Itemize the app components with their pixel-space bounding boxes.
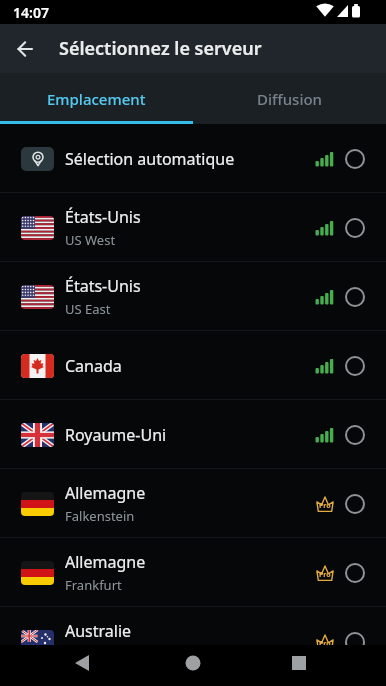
button[interactable]: Sélection automatique [0,124,386,193]
staticText: États-Unis [65,206,141,228]
button[interactable]: Allemagne [0,538,386,607]
staticText: Canada [65,355,122,377]
button[interactable]: Royaume-Uni [0,400,386,469]
button[interactable]: Emplacement [0,73,193,124]
button[interactable] [257,645,386,686]
staticText: US West [65,231,116,249]
staticText: États-Unis [65,275,141,297]
staticText: Emplacement [47,89,146,109]
staticText: Falkenstein [65,507,135,525]
button[interactable]: Australie [0,607,386,645]
button[interactable]: Allemagne [0,469,386,538]
staticText: Sélectionnez le serveur [59,36,262,61]
staticText: Diffusion [257,89,323,109]
button[interactable] [128,645,257,686]
button[interactable]: Diffusion [193,73,386,124]
staticText: Allemagne [65,551,146,573]
button[interactable] [0,24,49,73]
staticText: Frankfurt [65,576,122,594]
button[interactable]: Canada [0,331,386,400]
staticText: Pro [319,639,331,645]
staticText: 14:07 [13,3,49,22]
staticText: Australie [65,620,132,642]
staticText: Allemagne [65,482,146,504]
staticText: US East [65,300,111,318]
button[interactable] [0,645,128,686]
button[interactable]: États-Unis [0,193,386,262]
staticText: Pro [319,501,331,511]
staticText: Royaume-Uni [65,424,167,446]
staticText: Sélection automatique [65,148,235,170]
button[interactable]: États-Unis [0,262,386,331]
staticText: Pro [319,570,331,580]
